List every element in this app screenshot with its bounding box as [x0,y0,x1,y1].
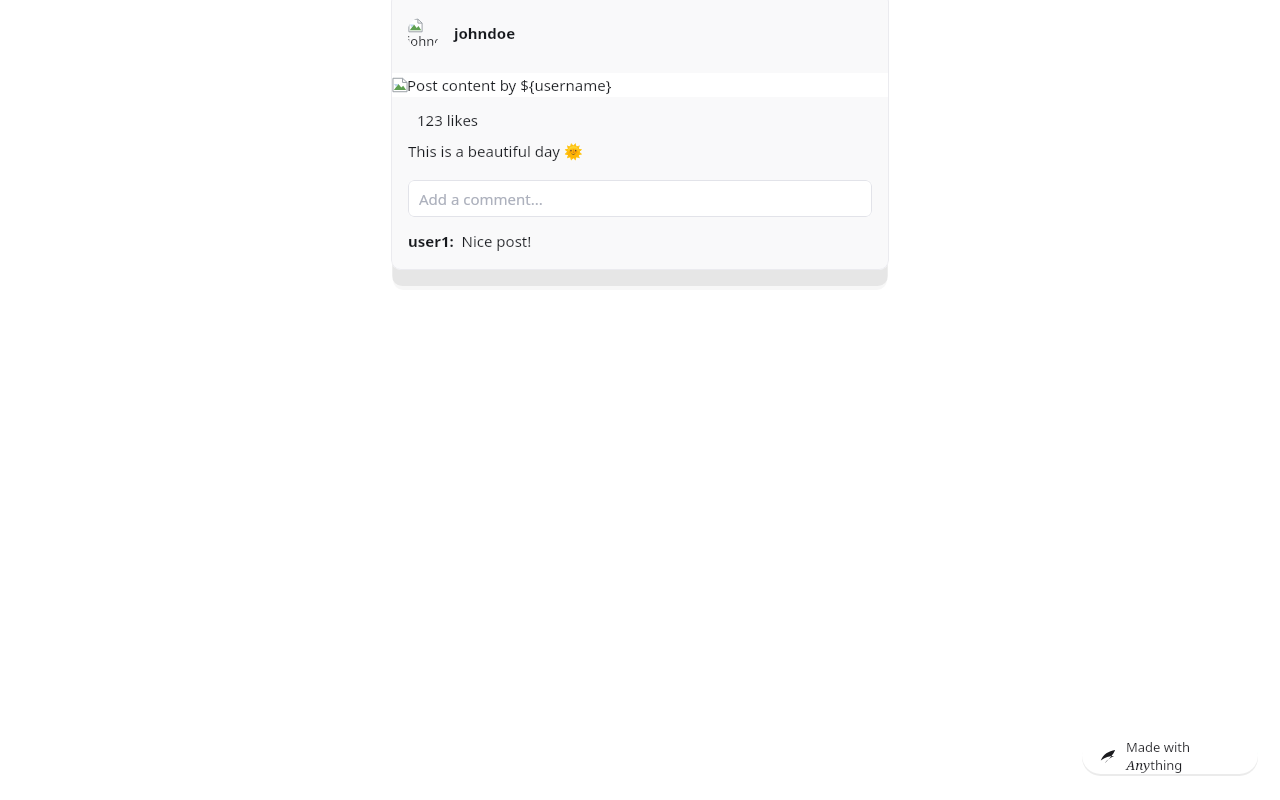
staticText: johndoe [407,32,439,49]
staticText: johndoe [454,23,516,43]
staticText: Post content by ${username} [407,75,612,95]
button[interactable]: 123 likes [391,110,479,130]
staticText: Add a comment... [419,189,543,209]
staticText: 123 likes [417,110,479,130]
staticText: user1: Nice post! [408,231,532,251]
staticText: Made with Anything [1126,738,1240,774]
button[interactable]: Made with Anything [1082,737,1258,774]
button[interactable]: Add a comment... [408,180,872,217]
button[interactable]: Post content [391,73,889,97]
button[interactable]: johndoe [391,0,889,73]
staticText: This is a beautiful day 🌞 [408,141,583,161]
